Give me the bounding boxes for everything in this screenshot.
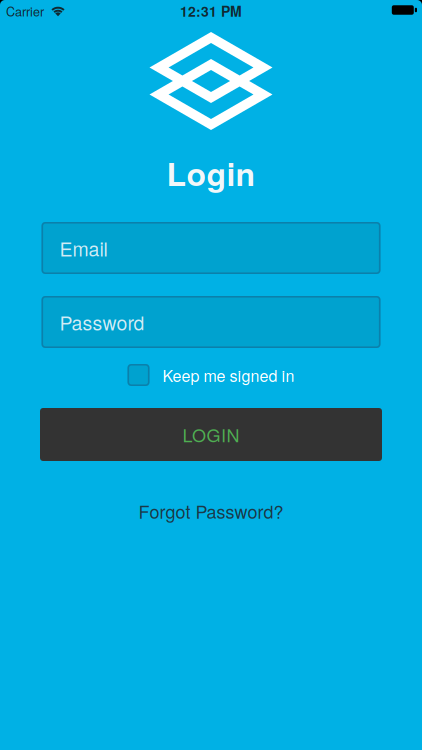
button[interactable]: Email [41,222,380,274]
button[interactable]: Forgot Password? [138,500,283,522]
button[interactable]: LOGIN [40,408,382,461]
staticText: Keep me signed in [162,363,294,386]
button[interactable]: Password [41,296,380,348]
staticText: Carrier [6,2,44,20]
staticText: Login [166,150,255,196]
staticText: Email [59,234,107,262]
staticText: 12:31 PM [180,1,242,21]
button[interactable]: Keep me signed in [127,364,294,386]
staticText: LOGIN [182,422,239,447]
staticText: Forgot Password? [138,498,283,524]
staticText: Password [59,308,144,336]
